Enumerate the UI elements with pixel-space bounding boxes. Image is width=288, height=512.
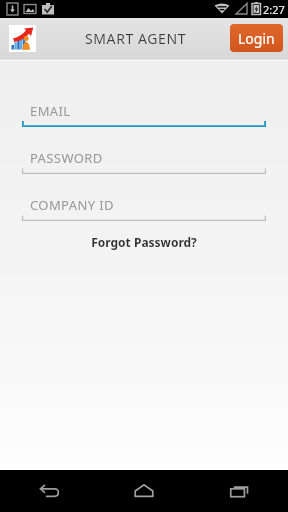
button[interactable]: Forgot Password? [0,234,288,250]
staticText: 2:27 [263,2,285,17]
button[interactable]: COMPANY ID [22,195,266,221]
button[interactable]: PASSWORD [22,148,266,174]
staticText: EMAIL [30,102,71,120]
button[interactable]: Home [96,470,192,512]
button[interactable]: Back [0,470,96,512]
button[interactable]: Login [230,24,283,52]
button[interactable]: Recent apps [192,470,288,512]
button[interactable]: App logo [9,25,36,52]
staticText: Forgot Password? [91,234,197,250]
staticText: SMART AGENT [85,29,187,48]
button[interactable]: EMAIL [22,101,266,127]
staticText: Login [238,29,275,48]
staticText: COMPANY ID [30,196,114,214]
staticText: PASSWORD [30,149,103,167]
